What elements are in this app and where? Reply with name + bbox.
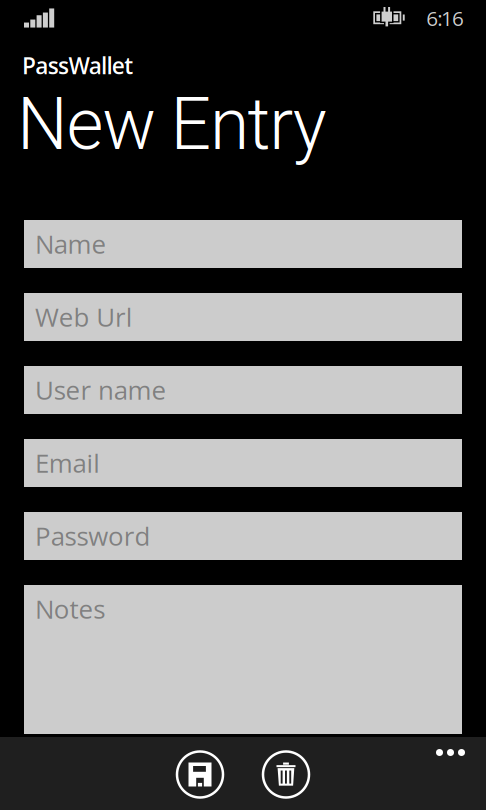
button[interactable]: Email	[24, 439, 462, 487]
staticText: Name	[35, 226, 106, 261]
button[interactable]: User name	[24, 366, 462, 414]
staticText: Web Url	[35, 299, 133, 334]
button[interactable]: Name	[24, 220, 462, 268]
button[interactable]: Delete	[263, 751, 309, 797]
staticText: New Entry	[17, 83, 327, 166]
staticText: Notes	[35, 591, 105, 626]
button[interactable]: Notes	[24, 585, 462, 734]
button[interactable]: Save	[177, 751, 223, 797]
button[interactable]: Password	[24, 512, 462, 560]
staticText: 6:16	[426, 4, 464, 32]
staticText: PassWallet	[22, 50, 133, 81]
staticText: User name	[35, 372, 166, 407]
staticText: Password	[35, 518, 151, 553]
button[interactable]: Web Url	[24, 293, 462, 341]
staticText: Email	[35, 445, 100, 480]
button[interactable]: More options	[426, 739, 475, 766]
